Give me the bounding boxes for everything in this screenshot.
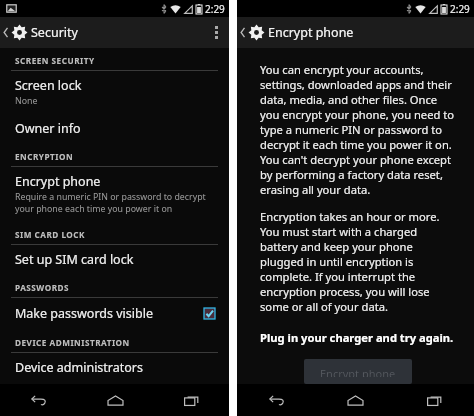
staticText: Make passwords visible bbox=[15, 305, 204, 322]
button[interactable]: Encrypt phone bbox=[0, 167, 229, 222]
button[interactable]: More options bbox=[203, 17, 229, 48]
button[interactable]: Encrypt phone bbox=[304, 359, 412, 384]
button[interactable]: Navigate up bbox=[237, 17, 271, 48]
staticText: DEVICE ADMINISTRATION bbox=[15, 337, 130, 348]
button[interactable]: Set up SIM card lock bbox=[0, 245, 229, 275]
staticText: Device administrators bbox=[15, 359, 144, 376]
staticText: Set up SIM card lock bbox=[15, 251, 134, 268]
staticText: Encryption takes an hour or more. You mu… bbox=[260, 209, 440, 314]
button[interactable]: Navigate up bbox=[0, 17, 34, 48]
staticText: PASSWORDS bbox=[15, 282, 70, 293]
staticText: Security bbox=[31, 24, 78, 41]
staticText: Encrypt phone bbox=[15, 173, 101, 190]
staticText: SCREEN SECURITY bbox=[15, 55, 95, 66]
staticText: Owner info bbox=[15, 120, 81, 137]
button[interactable]: Screen lock bbox=[0, 71, 229, 114]
staticText: Plug in your charger and try again. bbox=[260, 330, 454, 345]
button[interactable]: Home bbox=[316, 384, 395, 416]
staticText: SIM CARD LOCK bbox=[15, 229, 86, 240]
staticText: Require a numeric PIN or password to dec… bbox=[15, 191, 206, 215]
staticText: Encrypt phone bbox=[320, 366, 396, 377]
button[interactable]: Back bbox=[0, 384, 77, 416]
button[interactable]: Owner info bbox=[0, 114, 229, 144]
staticText: Screen lock bbox=[15, 77, 82, 94]
button[interactable]: Recent apps bbox=[153, 384, 229, 416]
button[interactable]: Device administrators bbox=[0, 353, 229, 383]
staticText: Encrypt phone bbox=[268, 24, 354, 41]
staticText: 2:29 bbox=[205, 2, 225, 16]
button[interactable]: Back bbox=[237, 384, 316, 416]
button[interactable]: Recent apps bbox=[395, 384, 474, 416]
staticText: ENCRYPTION bbox=[15, 151, 74, 162]
staticText: 2:29 bbox=[450, 2, 470, 16]
staticText: None bbox=[15, 95, 38, 107]
button[interactable]: Make passwords visible bbox=[0, 298, 229, 330]
staticText: You can encrypt your accounts, settings,… bbox=[260, 62, 455, 197]
button[interactable]: Home bbox=[77, 384, 153, 416]
